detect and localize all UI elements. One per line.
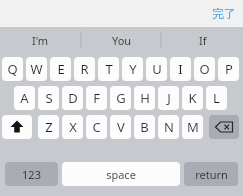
button[interactable]: D xyxy=(62,86,83,110)
button[interactable]: Q xyxy=(2,57,23,81)
button[interactable]: L xyxy=(206,86,227,110)
button[interactable]: W xyxy=(26,57,47,81)
staticText: Y xyxy=(129,60,137,78)
button[interactable]: E xyxy=(50,57,71,81)
staticText: T xyxy=(105,60,113,78)
staticText: O xyxy=(199,60,210,78)
staticText: F xyxy=(93,89,100,107)
button[interactable]: A xyxy=(14,86,35,110)
button[interactable]: If xyxy=(162,27,243,53)
button[interactable]: You xyxy=(81,27,162,53)
staticText: K xyxy=(188,89,197,107)
staticText: S xyxy=(45,89,53,107)
staticText: 完了 xyxy=(212,6,236,21)
staticText: If xyxy=(199,33,207,48)
staticText: X xyxy=(69,118,77,136)
staticText: R xyxy=(80,60,89,78)
button[interactable]: S xyxy=(38,86,59,110)
staticText: I xyxy=(178,60,183,78)
staticText: E xyxy=(57,60,65,78)
staticText: 123 xyxy=(22,167,41,182)
button[interactable]: space xyxy=(62,162,180,186)
button[interactable]: U xyxy=(146,57,167,81)
staticText: L xyxy=(213,89,220,107)
button[interactable]: Shift xyxy=(2,115,32,139)
staticText: A xyxy=(20,89,29,107)
button[interactable]: R xyxy=(74,57,95,81)
staticText: J xyxy=(167,89,171,107)
button[interactable]: 123 xyxy=(5,162,58,186)
staticText: U xyxy=(152,60,162,78)
button[interactable]: Backspace xyxy=(209,115,239,139)
button[interactable]: F xyxy=(86,86,107,110)
staticText: Z xyxy=(45,118,53,136)
button[interactable]: X xyxy=(62,115,83,139)
button[interactable]: H xyxy=(134,86,155,110)
button[interactable]: I xyxy=(170,57,191,81)
staticText: B xyxy=(140,118,149,136)
staticText: You xyxy=(112,33,132,48)
staticText: V xyxy=(117,118,125,136)
staticText: P xyxy=(225,60,233,78)
button[interactable]: return xyxy=(184,162,238,186)
button[interactable]: O xyxy=(194,57,215,81)
staticText: G xyxy=(116,89,126,107)
button[interactable]: B xyxy=(134,115,155,139)
button[interactable]: K xyxy=(182,86,203,110)
staticText: return xyxy=(195,167,228,182)
button[interactable]: G xyxy=(110,86,131,110)
staticText: D xyxy=(68,89,78,107)
staticText: I'm xyxy=(32,33,49,48)
button[interactable]: Y xyxy=(122,57,143,81)
button[interactable]: 完了 xyxy=(212,6,236,21)
button[interactable]: M xyxy=(182,115,203,139)
button[interactable]: V xyxy=(110,115,131,139)
button[interactable]: J xyxy=(158,86,179,110)
button[interactable]: Z xyxy=(38,115,59,139)
staticText: Q xyxy=(7,60,18,78)
staticText: C xyxy=(92,118,101,136)
staticText: H xyxy=(140,89,150,107)
staticText: N xyxy=(164,118,174,136)
button[interactable]: T xyxy=(98,57,119,81)
button[interactable]: N xyxy=(158,115,179,139)
staticText: space xyxy=(106,167,136,182)
staticText: W xyxy=(30,60,43,78)
button[interactable]: I'm xyxy=(0,27,81,53)
button[interactable]: P xyxy=(218,57,239,81)
button[interactable]: C xyxy=(86,115,107,139)
staticText: M xyxy=(187,118,199,136)
